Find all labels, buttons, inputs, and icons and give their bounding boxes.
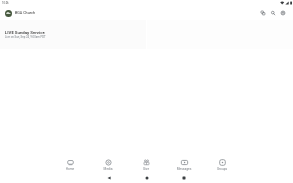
button[interactable]: Home — [51, 158, 89, 172]
staticText: Groups — [203, 167, 241, 171]
button[interactable]: Search — [268, 8, 278, 18]
button[interactable]: Account — [278, 8, 288, 18]
button[interactable]: Give — [127, 158, 165, 172]
staticText: 10:26 — [2, 2, 9, 5]
button[interactable]: Media — [89, 158, 127, 172]
button[interactable]: Home — [141, 172, 153, 183]
button[interactable]: Messages — [165, 158, 203, 172]
staticText: Home — [51, 167, 89, 171]
button[interactable]: Messages — [258, 8, 268, 18]
staticText: Give — [127, 167, 165, 171]
button[interactable]: LIVE Sunday Service — [0, 20, 146, 49]
button[interactable]: Recent apps — [178, 172, 190, 183]
staticText: BGA Church — [15, 11, 35, 15]
button[interactable]: BGA Church home — [5, 10, 12, 17]
button[interactable]: Groups — [203, 158, 241, 172]
staticText: Media — [89, 167, 127, 171]
staticText: LIVE Sunday Service — [5, 30, 45, 35]
staticText: Live on Sun, Sep 24, 9:00am PDT — [5, 35, 46, 38]
staticText: Messages — [165, 167, 203, 171]
button[interactable]: Back — [103, 172, 115, 183]
